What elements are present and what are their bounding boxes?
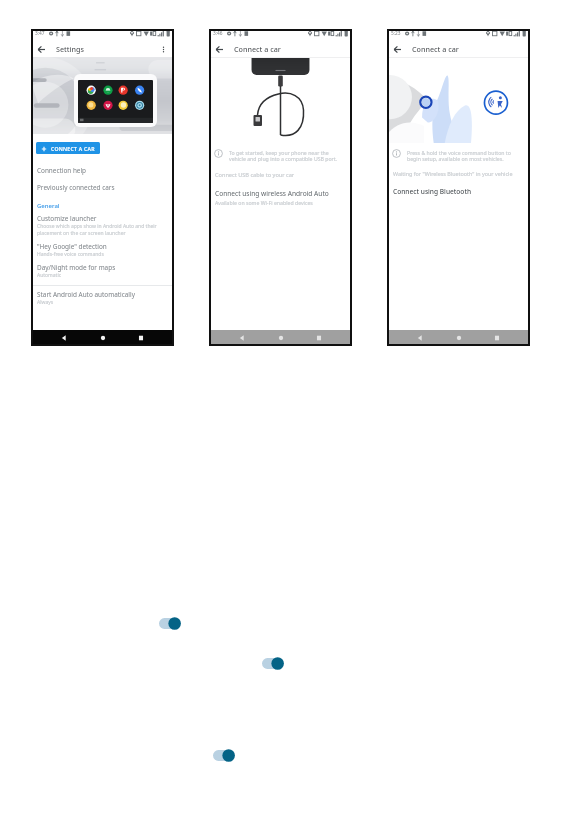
- button[interactable]: Customize launcher: [31, 214, 174, 236]
- button[interactable]: "Hey Google" detection: [31, 242, 174, 258]
- staticText: "Hey Google" detection: [37, 242, 107, 251]
- staticText: Connect using Bluetooth: [393, 187, 472, 196]
- staticText: Connect a car: [234, 44, 281, 54]
- staticText: Customize launcher: [37, 214, 97, 223]
- button[interactable]: Day/Night mode for maps: [31, 263, 174, 279]
- button[interactable]: Back: [58, 332, 70, 344]
- button[interactable]: Recents: [135, 332, 147, 344]
- button[interactable]: Toggle setting: [262, 656, 285, 671]
- button[interactable]: Recents: [313, 332, 325, 344]
- staticText: 3:47: [35, 30, 45, 37]
- button[interactable]: Toggle setting: [213, 748, 236, 763]
- staticText: General: [37, 202, 60, 210]
- button[interactable]: More options: [158, 44, 169, 55]
- button[interactable]: Recents: [491, 332, 503, 344]
- button[interactable]: Home: [97, 332, 109, 344]
- button[interactable]: Back: [214, 44, 225, 55]
- staticText: Start Android Auto automatically: [37, 290, 135, 299]
- staticText: Always: [37, 299, 54, 306]
- staticText: Settings: [56, 44, 84, 54]
- button[interactable]: Home: [275, 332, 287, 344]
- staticText: Connection help: [37, 166, 87, 175]
- button[interactable]: Connect using wireless Android Auto: [215, 189, 329, 206]
- button[interactable]: Back: [392, 44, 403, 55]
- staticText: Previously connected cars: [37, 183, 115, 192]
- staticText: Automatic: [37, 272, 62, 279]
- staticText: Hands-free voice commands: [37, 251, 104, 258]
- button[interactable]: CONNECT A CAR: [36, 142, 100, 154]
- staticText: Connect a car: [412, 44, 459, 54]
- button[interactable]: Home: [453, 332, 465, 344]
- button[interactable]: Connect using Bluetooth: [393, 187, 472, 196]
- button[interactable]: Back: [236, 332, 248, 344]
- staticText: 5:23: [391, 30, 401, 37]
- button[interactable]: Toggle setting: [159, 616, 182, 631]
- staticText: Press & hold the voice command button to…: [407, 149, 522, 163]
- button[interactable]: Back: [36, 44, 47, 55]
- button[interactable]: Connection help: [31, 162, 174, 179]
- button[interactable]: Start Android Auto automatically: [31, 290, 174, 306]
- staticText: Choose which apps show in Android Auto a…: [37, 223, 167, 236]
- staticText: Connect USB cable to your car: [215, 171, 295, 179]
- staticText: Connect using wireless Android Auto: [215, 189, 329, 198]
- staticText: Waiting for "Wireless Bluetooth" in your…: [393, 170, 513, 177]
- button[interactable]: Back: [414, 332, 426, 344]
- button[interactable]: Previously connected cars: [31, 179, 174, 196]
- staticText: 3:46: [213, 30, 223, 37]
- staticText: To get started, keep your phone near the…: [229, 149, 344, 163]
- staticText: Available on some Wi-Fi enabled devices: [215, 199, 313, 206]
- staticText: Day/Night mode for maps: [37, 263, 116, 272]
- staticText: CONNECT A CAR: [51, 145, 95, 152]
